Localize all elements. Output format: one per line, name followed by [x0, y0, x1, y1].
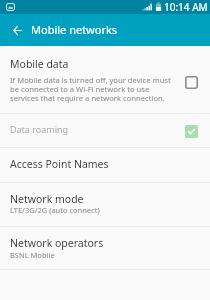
button[interactable]: Access Point Names: [0, 148, 210, 182]
button[interactable]: Network mode: [0, 183, 210, 226]
staticText: Data roaming: [10, 123, 69, 135]
staticText: Network operators: [10, 236, 104, 250]
staticText: Mobile data: [10, 57, 69, 71]
staticText: If Mobile data is turned off, your devic…: [10, 75, 178, 103]
staticText: Mobile networks: [31, 22, 118, 37]
button[interactable]: Back: [5, 18, 29, 42]
staticText: LTE/3G/2G (auto connect): [10, 205, 100, 215]
staticText: BSNL Mobile: [10, 250, 55, 260]
button[interactable]: Mobile data: [0, 46, 210, 113]
staticText: Network mode: [10, 192, 84, 206]
staticText: Access Point Names: [10, 157, 109, 171]
staticText: 10:14 AM: [164, 0, 208, 14]
button[interactable]: Network operators: [0, 227, 210, 269]
button[interactable]: Mobile data off: [185, 76, 198, 89]
button[interactable]: Data roaming: [0, 114, 210, 147]
